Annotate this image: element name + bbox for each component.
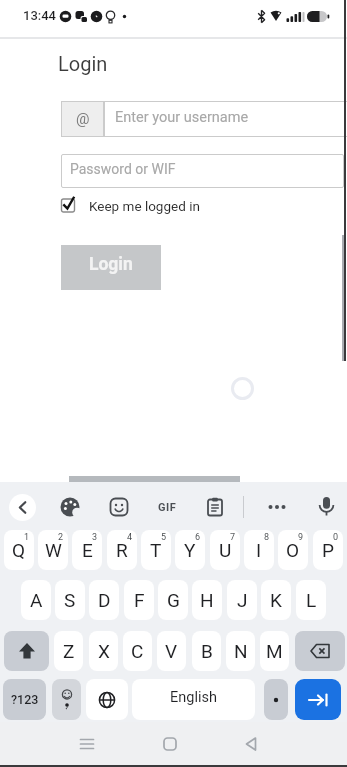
button[interactable] [86, 679, 128, 720]
button[interactable]: D [89, 580, 119, 620]
button[interactable]: O [278, 530, 308, 570]
button[interactable] [160, 734, 180, 754]
button[interactable]: T [141, 530, 171, 570]
button[interactable] [264, 679, 288, 720]
button[interactable] [77, 734, 97, 754]
button[interactable] [61, 196, 221, 216]
button[interactable]: V [157, 631, 186, 671]
staticText: D [98, 589, 111, 611]
staticText: C [131, 640, 144, 662]
staticText: X [98, 640, 110, 662]
button[interactable] [241, 734, 261, 754]
button[interactable] [52, 679, 81, 720]
button[interactable]: I [244, 530, 274, 570]
button[interactable] [108, 496, 130, 518]
staticText: O [286, 539, 300, 561]
button[interactable]: K [261, 580, 291, 620]
button[interactable]: J [227, 580, 257, 620]
button[interactable]: X [89, 631, 118, 671]
button[interactable]: N [226, 631, 255, 671]
staticText: P [322, 539, 334, 561]
button[interactable]: Y [175, 530, 205, 570]
button[interactable] [204, 496, 226, 518]
staticText: 1 [24, 532, 30, 543]
staticText: GIF [158, 501, 177, 514]
staticText: V [165, 640, 178, 662]
staticText: 13:44 [23, 8, 57, 23]
button[interactable]: S [55, 580, 85, 620]
staticText: B [201, 640, 213, 662]
button[interactable]: R [107, 530, 137, 570]
staticText: Password or WIF [70, 161, 176, 177]
staticText: Q [12, 539, 26, 561]
staticText: M [266, 640, 283, 662]
button[interactable] [295, 631, 345, 671]
button[interactable]: P [313, 530, 343, 570]
button[interactable]: Q [4, 530, 34, 570]
staticText: N [234, 640, 248, 662]
staticText: T [150, 539, 162, 561]
staticText: Enter your username [115, 109, 249, 126]
button[interactable]: M [260, 631, 289, 671]
button[interactable]: L [296, 580, 326, 620]
button[interactable]: B [192, 631, 221, 671]
button[interactable]: Login [61, 245, 161, 290]
staticText: ?123 [11, 692, 39, 707]
button[interactable] [295, 679, 341, 720]
staticText: Login [89, 254, 133, 275]
button[interactable]: U [210, 530, 240, 570]
button[interactable]: Z [54, 631, 83, 671]
button[interactable]: Password or WIF [61, 154, 344, 188]
staticText: Keep me logged in [89, 198, 200, 214]
staticText: F [134, 589, 145, 611]
staticText: G [167, 589, 180, 611]
button[interactable]: G [158, 580, 188, 620]
staticText: R [116, 539, 128, 561]
staticText: H [200, 589, 214, 611]
button[interactable]: H [192, 580, 222, 620]
button[interactable]: F [124, 580, 154, 620]
button[interactable]: W [38, 530, 68, 570]
staticText: 6 [195, 532, 201, 543]
button[interactable]: Enter your username [104, 101, 347, 137]
staticText: K [270, 589, 282, 611]
staticText: I [256, 539, 262, 561]
button[interactable]: GIF [152, 498, 182, 516]
button[interactable]: E [72, 530, 102, 570]
button[interactable] [266, 496, 288, 518]
staticText: 9 [298, 532, 304, 543]
staticText: 7 [230, 532, 236, 543]
staticText: Y [184, 539, 196, 561]
staticText: W [45, 539, 62, 561]
staticText: E [82, 539, 93, 561]
staticText: 5 [161, 532, 167, 543]
staticText: J [237, 589, 248, 611]
staticText: 4 [127, 532, 133, 543]
staticText: @ [76, 110, 90, 128]
button[interactable]: C [123, 631, 152, 671]
staticText: 3 [92, 532, 98, 543]
staticText: Z [63, 640, 75, 662]
button[interactable] [9, 494, 36, 521]
staticText: L [306, 589, 317, 611]
button[interactable]: English [132, 679, 255, 720]
staticText: 2 [58, 532, 64, 543]
staticText: A [30, 589, 43, 611]
button[interactable] [315, 495, 338, 518]
staticText: 8 [264, 532, 270, 543]
staticText: U [219, 539, 232, 561]
button[interactable] [4, 631, 49, 671]
staticText: Login [58, 52, 108, 75]
button[interactable] [59, 496, 81, 518]
staticText: 0 [333, 532, 339, 543]
staticText: English [170, 689, 217, 706]
staticText: S [64, 589, 76, 611]
button[interactable]: A [21, 580, 51, 620]
button[interactable]: ?123 [3, 679, 46, 720]
